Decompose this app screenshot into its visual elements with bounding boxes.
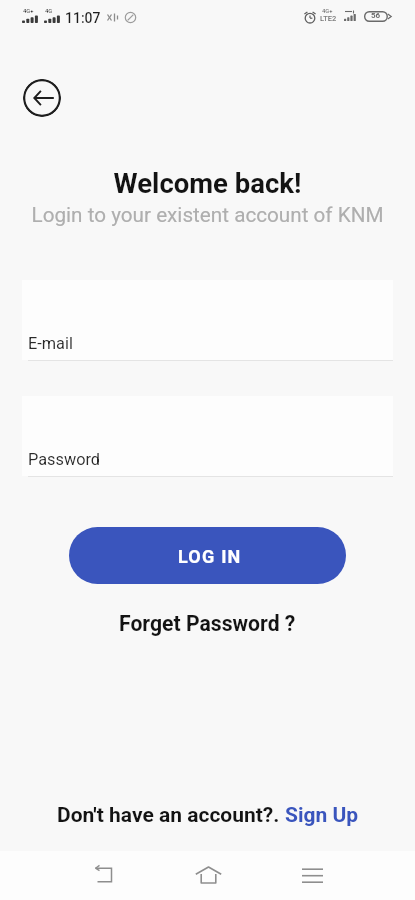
staticText: 4G+ xyxy=(322,8,333,15)
staticText: Password xyxy=(28,450,100,469)
staticText: 11:07 xyxy=(65,10,101,26)
button[interactable]: Home xyxy=(184,851,232,899)
button[interactable]: Sign Up xyxy=(285,803,359,828)
staticText: 4G+ xyxy=(23,8,34,15)
button[interactable]: Forget Password ? xyxy=(119,611,296,636)
button[interactable]: Recent apps xyxy=(288,851,336,899)
button[interactable]: E-mail xyxy=(22,280,393,360)
staticText: Forget Password ? xyxy=(119,611,296,636)
staticText: E-mail xyxy=(28,334,73,353)
staticText: LTE2 xyxy=(320,14,337,23)
button[interactable]: Password xyxy=(22,396,393,476)
button[interactable]: Back xyxy=(79,851,127,899)
button[interactable]: Back xyxy=(23,79,61,117)
staticText: Login to your existent account of KNM xyxy=(0,203,415,227)
staticText: Sign Up xyxy=(285,803,359,828)
staticText: 4G xyxy=(45,8,53,15)
staticText: Don't have an account?. xyxy=(57,803,280,828)
button[interactable]: LOG IN xyxy=(69,527,346,584)
staticText: LOG IN xyxy=(178,546,242,567)
staticText: 56 xyxy=(371,11,381,20)
staticText: Welcome back! xyxy=(0,167,415,199)
